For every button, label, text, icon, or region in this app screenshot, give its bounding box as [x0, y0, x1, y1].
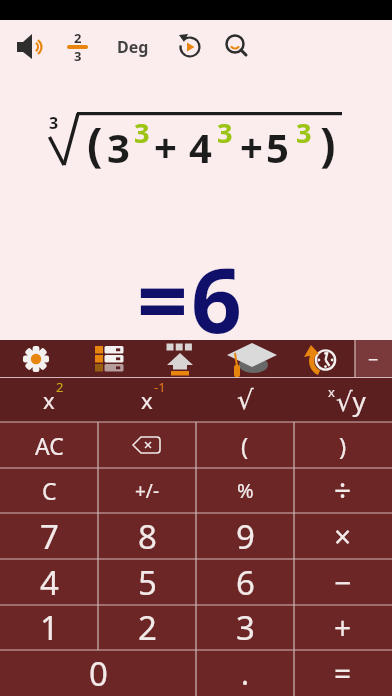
staticText: +/-	[135, 478, 160, 504]
button[interactable]: √	[196, 378, 294, 422]
staticText: √	[237, 385, 254, 415]
staticText: 9	[236, 514, 255, 559]
button[interactable]: %	[196, 468, 294, 513]
staticText: 3	[217, 114, 233, 151]
button[interactable]	[0, 340, 71, 378]
button[interactable]: )	[294, 422, 392, 468]
staticText: 3	[49, 112, 59, 134]
staticText: .	[241, 653, 250, 694]
staticText: +	[334, 607, 352, 648]
button[interactable]: +/-	[98, 468, 196, 513]
button[interactable]: 5	[98, 559, 196, 605]
button[interactable]	[56, 25, 100, 69]
staticText: 8	[138, 514, 157, 559]
staticText: =	[137, 238, 188, 359]
button[interactable]: +	[294, 605, 392, 650]
staticText: %	[237, 477, 254, 504]
button[interactable]	[110, 25, 154, 69]
button[interactable]	[71, 340, 142, 378]
staticText: √y	[336, 383, 366, 418]
button[interactable]: 1	[0, 605, 98, 650]
button[interactable]: 2	[98, 605, 196, 650]
button[interactable]	[213, 340, 284, 378]
staticText: AC	[35, 430, 64, 461]
button[interactable]: 6	[196, 559, 294, 605]
button[interactable]: x	[98, 378, 196, 422]
staticText: 5	[266, 120, 289, 174]
staticText: 6	[236, 560, 255, 605]
staticText: 3	[236, 605, 255, 650]
staticText: 3	[74, 47, 82, 65]
staticText: 1	[40, 605, 59, 650]
staticText: x	[43, 385, 55, 415]
button[interactable]: 7	[0, 513, 98, 559]
button[interactable]: C	[0, 468, 98, 513]
button[interactable]: .	[196, 650, 294, 696]
button[interactable]	[215, 25, 259, 69]
button[interactable]: √y	[294, 378, 392, 422]
button[interactable]	[98, 422, 196, 468]
staticText: 2	[74, 29, 82, 47]
staticText: 3	[296, 114, 312, 151]
button[interactable]: 9	[196, 513, 294, 559]
button[interactable]	[6, 25, 50, 69]
button[interactable]: 4	[0, 559, 98, 605]
button[interactable]: 3	[196, 605, 294, 650]
staticText: =	[334, 653, 352, 694]
staticText: 6	[191, 238, 242, 359]
button[interactable]: AC	[0, 422, 98, 468]
button[interactable]: 0	[0, 650, 196, 696]
staticText: 2	[56, 378, 64, 396]
staticText: Deg	[117, 36, 149, 58]
button[interactable]: 8	[98, 513, 196, 559]
staticText: 2	[138, 605, 157, 650]
button[interactable]	[142, 340, 213, 378]
staticText: 3	[107, 120, 130, 174]
staticText: +	[154, 119, 177, 173]
staticText: ÷	[334, 470, 352, 511]
staticText: −	[368, 347, 379, 372]
staticText: -1	[154, 378, 166, 396]
staticText: 3	[134, 114, 150, 151]
button[interactable]: =	[294, 650, 392, 696]
button[interactable]: −	[355, 340, 392, 378]
staticText: 4	[189, 120, 212, 174]
staticText: C	[42, 475, 57, 506]
button[interactable]: ÷	[294, 468, 392, 513]
button[interactable]	[284, 340, 355, 378]
staticText: −	[334, 562, 352, 603]
staticText: 5	[138, 560, 157, 605]
button[interactable]: ×	[294, 513, 392, 559]
staticText: 7	[40, 514, 59, 559]
button[interactable]	[168, 25, 212, 69]
staticText: x	[328, 383, 335, 401]
staticText: )	[320, 112, 336, 175]
staticText: +	[240, 119, 263, 173]
staticText: 4	[40, 560, 59, 605]
staticText: (	[241, 429, 249, 462]
staticText: 0	[89, 651, 108, 696]
button[interactable]: −	[294, 559, 392, 605]
staticText: x	[141, 385, 153, 415]
button[interactable]: (	[196, 422, 294, 468]
staticText: ×	[334, 516, 352, 557]
staticText: (	[87, 112, 103, 175]
staticText: )	[339, 429, 347, 462]
button[interactable]: x	[0, 378, 98, 422]
